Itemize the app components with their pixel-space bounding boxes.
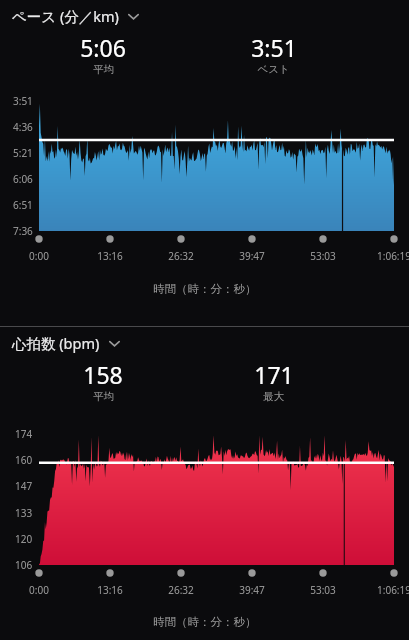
button[interactable]: 3:51 <box>186 32 361 76</box>
staticText: 1:06:19 <box>377 249 409 263</box>
staticText: 26:32 <box>168 249 194 263</box>
staticText: 3:51 <box>251 32 297 63</box>
staticText: 39:47 <box>239 249 265 263</box>
button[interactable]: ペース (分／km) <box>0 4 150 28</box>
staticText: 53:03 <box>310 249 336 263</box>
staticText: 5:06 <box>80 32 126 63</box>
button[interactable]: 158 <box>20 359 186 403</box>
button[interactable]: 171 <box>186 359 361 403</box>
staticText: 160 <box>15 453 33 467</box>
staticText: 心拍数 (bpm) <box>12 333 100 353</box>
other: Change metric <box>108 337 121 350</box>
staticText: 4:36 <box>13 120 33 134</box>
staticText: 平均 <box>93 63 114 76</box>
staticText: ベスト <box>257 63 290 76</box>
staticText: 7:36 <box>13 224 33 238</box>
staticText: 26:32 <box>168 583 194 597</box>
staticText: 0:00 <box>29 583 49 597</box>
staticText: 時間（時：分：秒） <box>153 615 257 629</box>
staticText: 133 <box>15 506 33 520</box>
staticText: 53:03 <box>310 583 336 597</box>
staticText: 6:06 <box>13 172 33 186</box>
staticText: 3:51 <box>13 94 33 108</box>
button[interactable]: 心拍数 (bpm) <box>0 331 131 355</box>
staticText: 106 <box>15 558 33 572</box>
staticText: 158 <box>83 359 123 390</box>
staticText: 時間（時：分：秒） <box>153 282 257 296</box>
staticText: 171 <box>254 359 294 390</box>
staticText: 120 <box>15 532 33 546</box>
staticText: 13:16 <box>97 249 123 263</box>
staticText: 最大 <box>263 390 284 403</box>
staticText: 1:06:19 <box>377 583 409 597</box>
button[interactable]: 5:06 <box>20 32 186 76</box>
staticText: 平均 <box>93 390 114 403</box>
staticText: 174 <box>15 427 33 441</box>
staticText: 147 <box>15 479 33 493</box>
staticText: 0:00 <box>29 249 49 263</box>
staticText: 13:16 <box>97 583 123 597</box>
staticText: 5:21 <box>13 146 33 160</box>
staticText: ペース (分／km) <box>12 6 119 26</box>
staticText: 6:51 <box>13 198 33 212</box>
other: Change metric <box>127 10 140 23</box>
staticText: 39:47 <box>239 583 265 597</box>
